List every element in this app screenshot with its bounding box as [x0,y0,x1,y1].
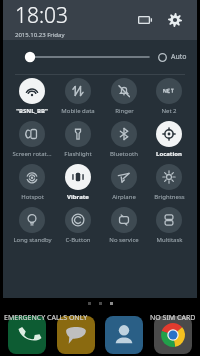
staticText: Net 2 [161,107,177,115]
button[interactable]: Flashlight [55,121,101,158]
button[interactable]: Brightness slider [25,48,151,66]
button[interactable]: Contacts [105,316,143,354]
staticText: Airplane [112,193,136,201]
button[interactable]: Screen rotat... [9,121,55,158]
button[interactable]: Mobile data [55,78,101,115]
staticText: Hotspot [21,193,44,201]
button[interactable]: Vibrate [55,164,101,201]
button[interactable]: Settings [165,10,185,30]
staticText: Bluetooth [110,150,138,158]
button[interactable]: Net 2 [147,78,191,115]
button[interactable]: Hotspot [9,164,55,201]
button[interactable]: C-Button [55,207,101,244]
button[interactable]: Location [147,121,191,158]
button[interactable]: Ringer [101,78,147,115]
button[interactable]: Brightness [147,164,191,201]
button[interactable]: Airplane [101,164,147,201]
button[interactable]: Battery 55 percent [135,12,155,28]
button[interactable]: Auto [158,52,187,62]
button[interactable]: Messages [57,316,95,354]
button[interactable]: Phone [8,316,46,354]
staticText: 2015.10.23 Friday [15,31,65,39]
button[interactable]: Long standby [9,207,55,244]
staticText: Screen rotat... [12,150,52,158]
button[interactable]: "BSNL_BB" [9,78,55,115]
staticText: Auto [171,52,187,62]
button[interactable]: No service [101,207,147,244]
staticText: Flashlight [64,150,92,158]
staticText: Vibrate [67,193,89,201]
staticText: "BSNL_BB" [16,107,48,115]
staticText: 18:03 [15,1,69,30]
staticText: Location [156,150,182,158]
button[interactable]: Bluetooth [101,121,147,158]
button[interactable]: Multitask [147,207,191,244]
staticText: No service [109,236,139,244]
button[interactable]: Chrome [154,316,192,354]
staticText: Mobile data [61,107,95,115]
staticText: Ringer [115,107,134,115]
staticText: NO SIM CARD [150,313,196,323]
staticText: Multitask [156,236,183,244]
staticText: EMERGENCY CALLS ONLY [4,313,88,323]
staticText: Brightness [154,193,185,201]
staticText: C-Button [65,236,91,244]
staticText: Long standby [13,236,52,244]
